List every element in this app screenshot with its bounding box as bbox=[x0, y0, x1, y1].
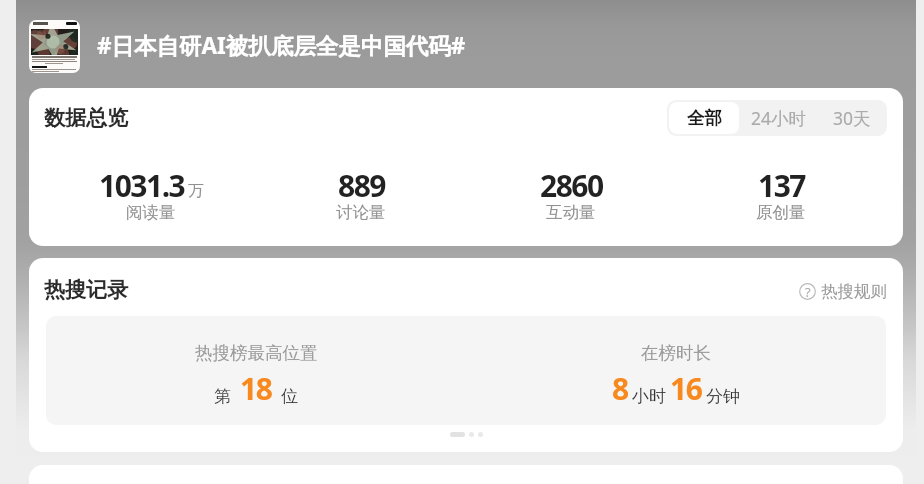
staticText: 全部 bbox=[687, 107, 722, 129]
staticText: 8 bbox=[612, 368, 628, 409]
button[interactable]: 数据总览 bbox=[44, 105, 128, 131]
staticText: 热搜规则 bbox=[821, 281, 887, 302]
staticText: 2860 bbox=[540, 165, 603, 206]
staticText: 位 bbox=[281, 386, 298, 407]
button[interactable]: 2860 bbox=[466, 165, 676, 227]
staticText: 热搜榜最高位置 bbox=[195, 342, 318, 364]
button[interactable]: 热搜记录 bbox=[44, 277, 128, 303]
staticText: 阅读量 bbox=[126, 202, 176, 223]
button[interactable]: 热搜规则 bbox=[799, 281, 887, 302]
button[interactable]: 24小时 bbox=[741, 100, 816, 136]
button[interactable]: 30天 bbox=[816, 100, 887, 136]
staticText: 讨论量 bbox=[336, 202, 386, 223]
staticText: 小时 bbox=[632, 386, 666, 407]
staticText: 137 bbox=[758, 165, 805, 206]
staticText: 889 bbox=[338, 165, 385, 206]
staticText: 原创量 bbox=[756, 202, 806, 223]
staticText: 24小时 bbox=[751, 106, 807, 130]
button[interactable]: 在榜时长 bbox=[466, 316, 886, 425]
staticText: 万 bbox=[188, 181, 204, 201]
staticText: 18 bbox=[240, 368, 272, 409]
button[interactable]: 1031.3 bbox=[46, 165, 256, 227]
staticText: 16 bbox=[670, 368, 702, 409]
button[interactable]: 缩略图 bbox=[29, 20, 80, 73]
button[interactable]: #日本自研AI被扒底层全是中国代码# bbox=[97, 30, 466, 61]
staticText: 1031.3 bbox=[99, 165, 185, 206]
staticText: 互动量 bbox=[546, 202, 596, 223]
staticText: ? bbox=[805, 283, 811, 300]
staticText: 在榜时长 bbox=[641, 342, 711, 364]
staticText: 30天 bbox=[833, 106, 871, 130]
button[interactable]: 137 bbox=[676, 165, 886, 227]
button[interactable]: 889 bbox=[256, 165, 466, 227]
staticText: 分钟 bbox=[706, 386, 740, 407]
staticText: 第 bbox=[214, 386, 231, 407]
button[interactable]: 热搜榜最高位置 bbox=[46, 316, 466, 425]
button[interactable]: 全部 bbox=[669, 102, 739, 134]
